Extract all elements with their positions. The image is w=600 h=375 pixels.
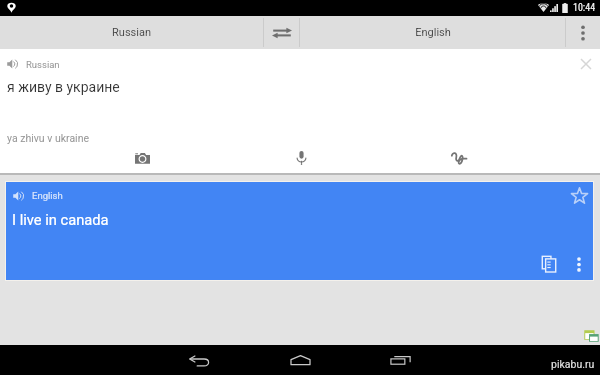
button[interactable]: Back bbox=[150, 345, 250, 375]
button[interactable]: Copy translation bbox=[538, 253, 560, 275]
button[interactable]: Camera input bbox=[63, 147, 222, 169]
staticText: ya zhivu v ukraine bbox=[7, 132, 90, 144]
staticText: English bbox=[32, 190, 63, 201]
button[interactable]: Save to phrasebook bbox=[567, 184, 589, 206]
button[interactable]: Swap languages bbox=[264, 16, 299, 49]
button[interactable]: Multi window bbox=[583, 330, 599, 342]
button[interactable]: English bbox=[300, 16, 565, 49]
staticText: 10:44 bbox=[573, 2, 596, 14]
staticText: pikabu.ru bbox=[551, 358, 595, 370]
staticText: Russian bbox=[112, 26, 151, 39]
button[interactable]: English bbox=[6, 182, 593, 280]
button[interactable]: Clear text bbox=[576, 54, 596, 74]
staticText: Russian bbox=[26, 59, 60, 70]
button[interactable]: Recent apps bbox=[350, 345, 450, 375]
staticText: я живу в украине bbox=[7, 79, 120, 95]
button[interactable]: Handwriting input bbox=[380, 147, 538, 169]
button[interactable]: More options bbox=[566, 16, 600, 49]
staticText: English bbox=[415, 26, 451, 39]
button[interactable]: Russian bbox=[0, 16, 263, 49]
button[interactable]: More options bbox=[569, 254, 589, 274]
staticText: I live in canada bbox=[12, 211, 109, 228]
button[interactable]: Voice input bbox=[222, 147, 380, 169]
button[interactable]: Home bbox=[250, 345, 350, 375]
